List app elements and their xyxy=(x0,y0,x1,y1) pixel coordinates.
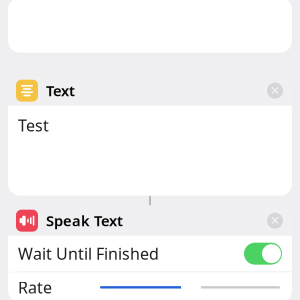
staticText: Wait Until Finished xyxy=(18,243,159,264)
button[interactable]: Wait Until Finished xyxy=(8,236,292,272)
staticText: ✕ xyxy=(270,84,280,97)
staticText: ✕ xyxy=(270,214,280,227)
staticText: Speak Text xyxy=(46,211,123,230)
button[interactable]: Remove action xyxy=(262,78,288,104)
staticText: Test xyxy=(18,115,49,136)
staticText: Rate xyxy=(18,277,52,298)
staticText: Text xyxy=(46,81,75,100)
button[interactable]: Wait Until Finished, on xyxy=(244,243,282,265)
button[interactable]: Remove action xyxy=(262,208,288,234)
